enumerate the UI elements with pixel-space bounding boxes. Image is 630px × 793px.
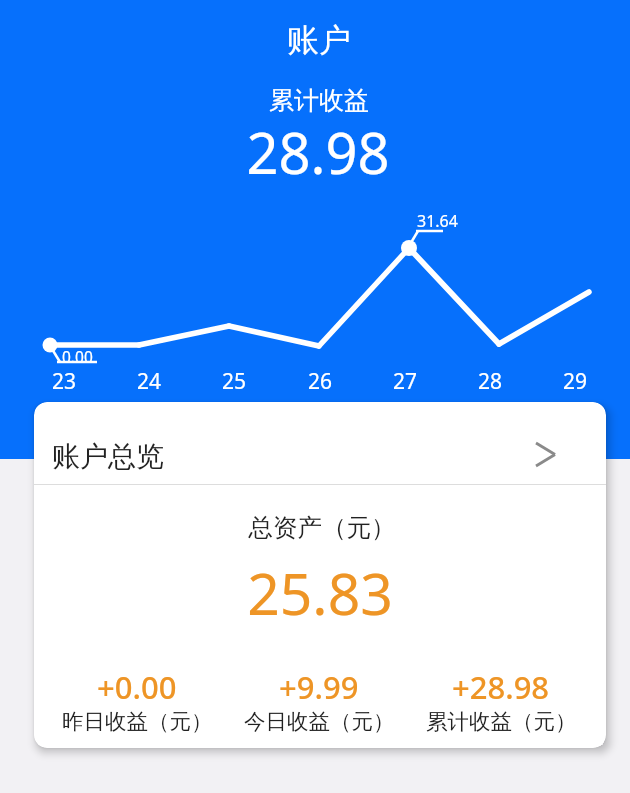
staticText: 昨日收益（元） xyxy=(62,708,213,735)
staticText: 账户总览 xyxy=(52,439,164,474)
staticText: 账户 xyxy=(4,20,630,60)
staticText: 23 xyxy=(48,367,80,396)
button[interactable]: +28.98 xyxy=(411,666,591,735)
staticText: +28.98 xyxy=(452,666,550,708)
staticText: 28.98 xyxy=(3,114,630,190)
staticText: 累计收益 xyxy=(4,85,630,116)
other: Open account overview xyxy=(535,443,559,467)
staticText: 24 xyxy=(133,367,165,396)
staticText: 28 xyxy=(474,367,506,396)
staticText: +9.99 xyxy=(279,666,359,708)
staticText: 0.00 xyxy=(62,346,93,367)
staticText: 27 xyxy=(389,367,421,396)
staticText: 31.64 xyxy=(417,210,458,232)
button[interactable]: +9.99 xyxy=(229,666,409,735)
staticText: 累计收益（元） xyxy=(426,708,577,735)
staticText: 25 xyxy=(218,367,250,396)
staticText: 26 xyxy=(304,367,336,396)
button[interactable]: +0.00 xyxy=(47,666,227,735)
staticText: +0.00 xyxy=(97,666,177,708)
staticText: 25.83 xyxy=(34,554,606,632)
button[interactable]: 账户总览 xyxy=(34,402,606,484)
staticText: 今日收益（元） xyxy=(244,708,395,735)
other: Earnings line chart xyxy=(0,0,630,459)
staticText: 29 xyxy=(559,367,591,396)
staticText: 总资产（元） xyxy=(36,512,606,543)
